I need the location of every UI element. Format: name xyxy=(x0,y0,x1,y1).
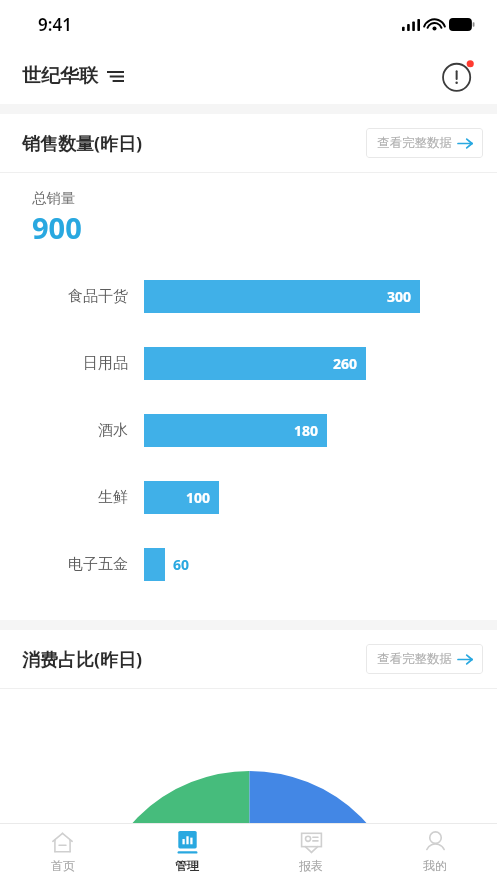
button[interactable]: 查看完整数据 xyxy=(366,644,483,674)
staticText: 60 xyxy=(173,555,190,574)
staticText: 报表 xyxy=(299,858,323,873)
staticText: 销售数量(昨日) xyxy=(22,131,143,156)
staticText: 100 xyxy=(186,488,211,507)
staticText: 查看完整数据 xyxy=(377,651,452,667)
button[interactable]: Notifications xyxy=(437,55,479,97)
staticText: 消费占比(昨日) xyxy=(22,647,143,672)
button[interactable]: 世纪华联 xyxy=(22,64,124,88)
staticText: 酒水 xyxy=(0,421,128,440)
button[interactable]: 首页 xyxy=(0,824,125,883)
button[interactable]: 查看完整数据 xyxy=(366,128,483,158)
staticText: 食品干货 xyxy=(0,287,128,306)
button[interactable]: 报表 xyxy=(249,824,373,883)
staticText: 电子五金 xyxy=(0,555,128,574)
staticText: 日用品 xyxy=(0,354,128,373)
staticText: 首页 xyxy=(51,858,75,873)
button[interactable]: 管理 xyxy=(125,824,249,883)
staticText: 总销量 xyxy=(32,189,76,207)
button[interactable]: 我的 xyxy=(373,824,497,883)
staticText: 260 xyxy=(333,354,358,373)
staticText: 管理 xyxy=(175,858,199,873)
staticText: 生鲜 xyxy=(0,488,128,507)
staticText: 180 xyxy=(294,421,319,440)
staticText: 9:41 xyxy=(38,13,72,36)
staticText: 我的 xyxy=(423,858,447,873)
staticText: 300 xyxy=(387,287,412,306)
staticText: 900 xyxy=(32,208,82,247)
staticText: 世纪华联 xyxy=(22,64,98,88)
staticText: 查看完整数据 xyxy=(377,135,452,151)
